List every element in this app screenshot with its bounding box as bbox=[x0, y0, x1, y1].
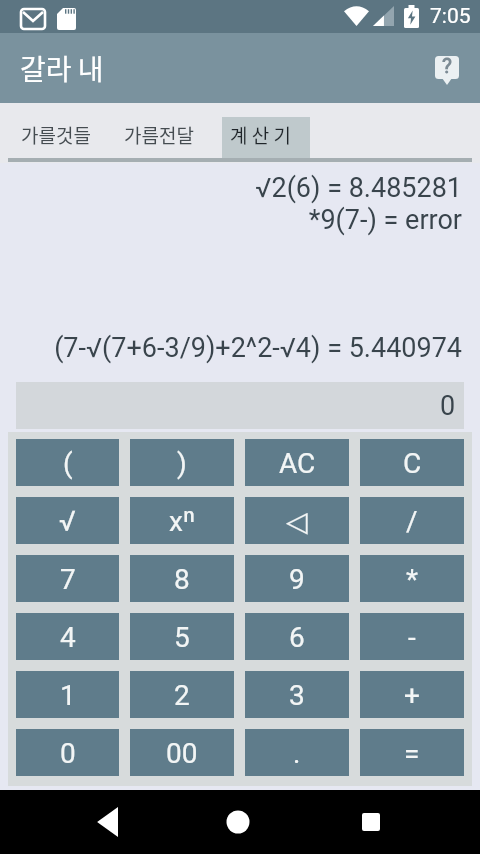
button[interactable]: 4 bbox=[16, 613, 119, 660]
staticText: √ bbox=[59, 505, 76, 538]
staticText: 8 bbox=[174, 563, 190, 596]
button[interactable] bbox=[221, 805, 255, 839]
button[interactable]: xⁿ bbox=[130, 497, 234, 544]
button[interactable]: 가를것들 bbox=[21, 121, 91, 149]
button[interactable]: 9 bbox=[245, 555, 349, 602]
staticText: ( bbox=[63, 447, 73, 480]
button[interactable]: * bbox=[360, 555, 464, 602]
staticText: ? bbox=[442, 54, 452, 79]
button[interactable]: - bbox=[360, 613, 464, 660]
button[interactable]: 6 bbox=[245, 613, 349, 660]
button[interactable]: ) bbox=[130, 439, 234, 486]
staticText: / bbox=[406, 505, 418, 538]
staticText: AC bbox=[279, 447, 316, 480]
button[interactable]: 2 bbox=[130, 671, 234, 718]
staticText: 계 산 기 bbox=[230, 121, 291, 149]
button[interactable] bbox=[90, 801, 124, 843]
staticText: * bbox=[406, 563, 419, 596]
button[interactable]: 5 bbox=[130, 613, 234, 660]
staticText: √2(6) = 8.485281 bbox=[0, 172, 462, 204]
button[interactable]: + bbox=[360, 671, 464, 718]
button[interactable]: ( bbox=[16, 439, 119, 486]
staticText: 3 bbox=[289, 679, 305, 712]
staticText: 4 bbox=[60, 621, 76, 654]
button[interactable]: / bbox=[360, 497, 464, 544]
button[interactable]: 가름전달 bbox=[124, 121, 194, 149]
staticText: ◁ bbox=[286, 505, 308, 538]
staticText: *9(7-) = error bbox=[0, 204, 462, 236]
staticText: 5 bbox=[174, 621, 190, 654]
button[interactable]: = bbox=[360, 729, 464, 776]
button[interactable]: 00 bbox=[130, 729, 234, 776]
button[interactable]: AC bbox=[245, 439, 349, 486]
staticText: 1 bbox=[60, 679, 76, 712]
button[interactable]: 8 bbox=[130, 555, 234, 602]
button[interactable]: √ bbox=[16, 497, 119, 544]
staticText: 7 bbox=[60, 563, 76, 596]
button[interactable]: 1 bbox=[16, 671, 119, 718]
button[interactable]: ◁ bbox=[245, 497, 349, 544]
button[interactable]: 3 bbox=[245, 671, 349, 718]
staticText: + bbox=[404, 679, 420, 712]
staticText: ) bbox=[177, 447, 187, 480]
staticText: 갈라 내 bbox=[20, 48, 104, 89]
staticText: xⁿ bbox=[169, 505, 195, 538]
staticText: 9 bbox=[289, 563, 305, 596]
staticText: = bbox=[404, 737, 420, 770]
staticText: 2 bbox=[174, 679, 190, 712]
button[interactable] bbox=[354, 805, 388, 839]
staticText: C bbox=[403, 447, 422, 480]
staticText: . bbox=[293, 737, 301, 770]
staticText: 6 bbox=[289, 621, 305, 654]
staticText: 0 bbox=[60, 737, 76, 770]
button[interactable]: . bbox=[245, 729, 349, 776]
button[interactable]: 7 bbox=[16, 555, 119, 602]
staticText: - bbox=[408, 621, 416, 654]
button[interactable]: ? bbox=[435, 56, 459, 86]
staticText: (7-√(7+6-3/9)+2^2-√4) = 5.440974 bbox=[0, 332, 462, 364]
staticText: 0 bbox=[440, 390, 456, 422]
button[interactable] bbox=[222, 117, 310, 161]
button[interactable]: 0 bbox=[16, 729, 119, 776]
staticText: 7:05 bbox=[430, 4, 471, 29]
button[interactable]: C bbox=[360, 439, 464, 486]
staticText: 00 bbox=[166, 737, 198, 770]
